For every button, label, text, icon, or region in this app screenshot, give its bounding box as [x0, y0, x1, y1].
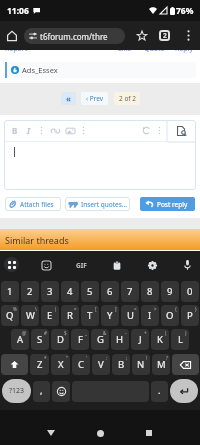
button[interactable]: W — [21, 305, 39, 326]
staticText: P — [187, 309, 193, 322]
staticText: . — [158, 384, 161, 396]
button[interactable]: More options — [177, 21, 199, 50]
staticText: " — [66, 355, 68, 361]
staticText: 6 — [107, 285, 113, 298]
button[interactable]: G — [91, 329, 109, 350]
button[interactable]: Settings — [143, 256, 161, 274]
button[interactable]: First page — [61, 92, 76, 105]
button[interactable]: Home — [89, 422, 111, 444]
button[interactable]: Backspace — [172, 354, 199, 375]
button[interactable]: Ads_Essex — [5, 62, 196, 78]
button[interactable]: 3 — [41, 281, 59, 302]
staticText: K — [157, 333, 163, 346]
staticText: W — [26, 309, 35, 322]
staticText: « — [66, 93, 71, 104]
button[interactable]: Back — [40, 422, 62, 444]
staticText: J — [139, 333, 142, 346]
button[interactable]: A — [11, 329, 29, 350]
staticText: ) — [185, 330, 187, 336]
button[interactable]: 0 — [181, 281, 199, 302]
button[interactable]: D — [51, 329, 69, 350]
staticText: ?123 — [9, 386, 25, 396]
button[interactable]: . — [151, 381, 168, 402]
button[interactable]: GIF — [72, 256, 90, 274]
button[interactable]: U — [121, 305, 139, 326]
button[interactable]: Recent apps — [138, 422, 160, 444]
button[interactable]: E — [41, 305, 59, 326]
button[interactable]: 5 — [81, 281, 99, 302]
button[interactable]: Tabs, 2 open — [152, 21, 177, 50]
button[interactable]: C — [72, 354, 90, 375]
staticText: Report — [5, 44, 28, 54]
button[interactable]: Symbols — [2, 379, 31, 403]
button[interactable]: t6forum.com/thre — [24, 28, 125, 44]
button[interactable]: Switch input method — [4, 257, 19, 272]
button[interactable]: O — [161, 305, 179, 326]
staticText: 5 — [87, 285, 93, 298]
staticText: 2 — [27, 285, 33, 298]
staticText: G — [97, 333, 104, 346]
staticText: H — [116, 333, 124, 346]
staticText: + — [144, 330, 147, 336]
button[interactable]: 1 — [1, 281, 19, 302]
staticText: 2 of 2 — [119, 94, 136, 103]
staticText: < — [134, 306, 137, 312]
staticText: L — [178, 333, 183, 346]
button[interactable]: 6 — [101, 281, 119, 302]
button[interactable]: 7 — [121, 281, 139, 302]
button[interactable]: Post reply — [140, 197, 195, 211]
staticText: = — [74, 306, 77, 312]
button[interactable]: , — [33, 381, 50, 402]
button[interactable]: Home — [0, 21, 24, 50]
button[interactable]: 4 — [61, 281, 79, 302]
button[interactable]: 2 of 2 — [114, 92, 140, 105]
button[interactable]: Q — [1, 305, 19, 326]
staticText: A — [17, 333, 24, 346]
button[interactable]: Shift — [1, 354, 28, 375]
button[interactable]: K — [151, 329, 169, 350]
staticText: Z — [37, 358, 43, 371]
staticText: \ — [35, 306, 37, 312]
button[interactable]: M — [152, 354, 170, 375]
button[interactable]: P — [181, 305, 199, 326]
button[interactable]: Attach files — [5, 197, 61, 211]
button[interactable]: T — [81, 305, 99, 326]
staticText: ? — [166, 355, 168, 361]
button[interactable]: Clipboard — [108, 256, 126, 274]
button[interactable]: 8 — [141, 281, 159, 302]
button[interactable]: Enter — [170, 379, 198, 403]
button[interactable]: V — [92, 354, 110, 375]
button[interactable]: ‹ Prev — [81, 92, 108, 105]
button[interactable]: F — [71, 329, 89, 350]
button[interactable]: Insert quotes... — [65, 197, 130, 211]
staticText: O — [166, 309, 174, 322]
button[interactable]: Z — [30, 354, 49, 375]
button[interactable]: Bookmark — [131, 21, 152, 50]
button[interactable]: Voice input — [179, 257, 195, 273]
staticText: @ — [22, 330, 27, 336]
staticText: $ — [64, 330, 67, 336]
button[interactable]: S — [31, 329, 49, 350]
staticText: - — [125, 330, 127, 336]
button[interactable]: Preview — [167, 120, 196, 142]
button[interactable]: Stickers — [37, 256, 55, 274]
button[interactable]: Emoji — [52, 381, 70, 402]
button[interactable]: H — [111, 329, 129, 350]
button[interactable]: L — [171, 329, 189, 350]
staticText: Similar threads — [5, 234, 69, 246]
button[interactable]: Y — [101, 305, 119, 326]
staticText: > — [154, 306, 157, 312]
button[interactable]: B — [112, 354, 130, 375]
staticText: D — [57, 333, 64, 346]
button[interactable]: 9 — [161, 281, 179, 302]
button[interactable]: X — [51, 354, 70, 375]
staticText: * — [44, 355, 47, 361]
button[interactable]: 2 — [21, 281, 39, 302]
button[interactable]: I — [141, 305, 159, 326]
staticText: Post reply — [157, 200, 188, 209]
button[interactable]: J — [131, 329, 149, 350]
button[interactable]: N — [132, 354, 150, 375]
button[interactable]: R — [61, 305, 79, 326]
staticText: ] — [115, 306, 117, 312]
